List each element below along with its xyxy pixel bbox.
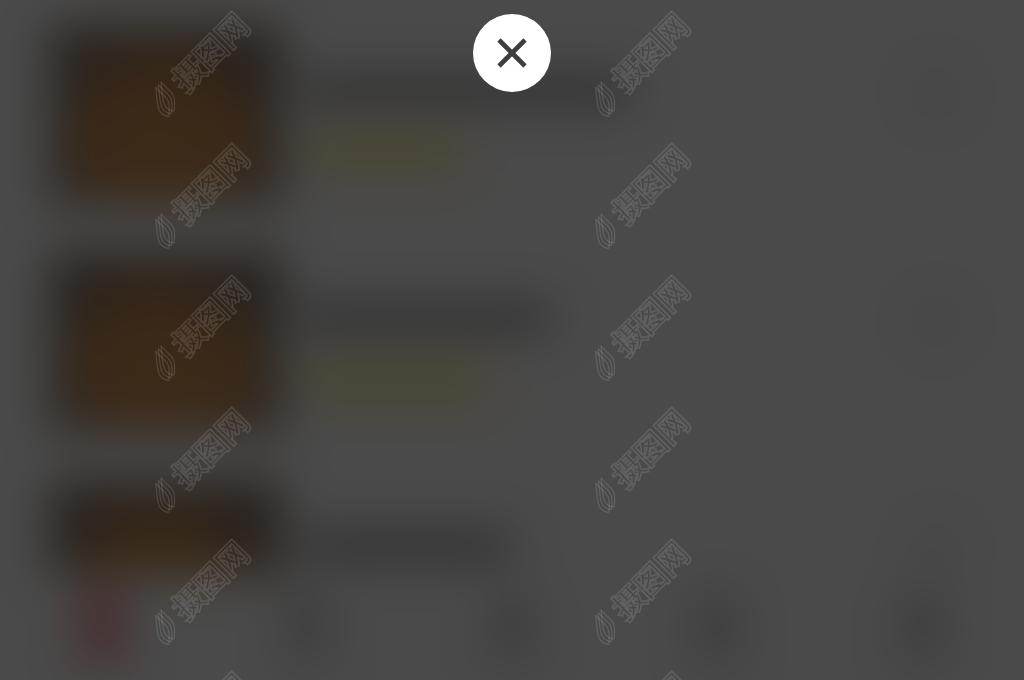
staticText: 摄图网 bbox=[604, 270, 697, 363]
staticText: 摄图网 bbox=[604, 138, 697, 231]
staticText: 摄图网 bbox=[164, 534, 257, 627]
button[interactable] bbox=[0, 25, 1024, 205]
button[interactable]: Close bbox=[473, 14, 551, 92]
staticText: 摄图网 bbox=[604, 402, 697, 495]
staticText: 摄图网 bbox=[604, 6, 697, 99]
staticText: 摄图网 bbox=[164, 6, 257, 99]
staticText: 摄图网 bbox=[164, 270, 257, 363]
button[interactable] bbox=[614, 576, 819, 680]
button[interactable] bbox=[0, 481, 1024, 661]
staticText: 摄图网 bbox=[604, 666, 697, 680]
button[interactable] bbox=[204, 576, 409, 680]
staticText: 摄图网 bbox=[164, 666, 257, 680]
staticText: 摄图网 bbox=[164, 138, 257, 231]
staticText: 摄图网 bbox=[164, 402, 257, 495]
button[interactable] bbox=[0, 253, 1024, 433]
button[interactable] bbox=[0, 576, 204, 680]
button[interactable] bbox=[409, 576, 614, 680]
staticText: 摄图网 bbox=[604, 534, 697, 627]
